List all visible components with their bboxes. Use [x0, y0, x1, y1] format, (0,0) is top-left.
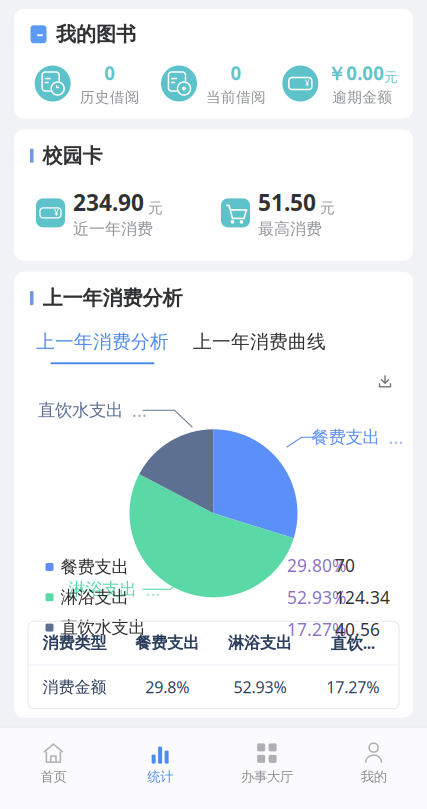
staticText: 上一年消费分析	[42, 286, 182, 310]
staticText: 直饮水支出	[60, 617, 145, 638]
button[interactable]: ¥	[282, 61, 397, 106]
staticText: ¥	[54, 208, 59, 218]
staticText: 办事大厅	[241, 769, 293, 785]
staticText: 首页	[40, 769, 66, 785]
staticText: 淋浴支出	[228, 633, 292, 653]
staticText: 52.93%	[233, 676, 286, 698]
staticText: 历史借阅	[80, 88, 140, 106]
staticText: 元	[384, 69, 397, 85]
staticText: 29.80%	[287, 554, 346, 577]
staticText: 消费类型	[42, 633, 106, 653]
staticText: 40.56	[335, 618, 380, 641]
staticText: 统计	[147, 769, 173, 785]
staticText: ¥	[305, 78, 310, 89]
button[interactable]: 下载	[375, 371, 395, 391]
staticText: 我的图书	[56, 22, 136, 47]
staticText: 17.27%	[326, 676, 379, 698]
button[interactable]: 统计	[107, 735, 214, 793]
staticText: 52.93%	[287, 586, 346, 609]
staticText: 餐费支出	[311, 427, 379, 448]
staticText: 我的	[361, 769, 387, 785]
staticText: 51.50	[258, 187, 316, 217]
staticText: 餐费支出	[60, 556, 128, 578]
staticText: 70	[335, 554, 355, 577]
staticText: 0	[230, 61, 241, 85]
staticText: 17.27%	[287, 618, 346, 641]
button[interactable]: 首页	[0, 735, 107, 793]
button[interactable]: 上一年消费分析	[36, 330, 169, 364]
button[interactable]: 上一年消费曲线	[169, 330, 326, 353]
button[interactable]: 我的	[320, 735, 427, 793]
staticText: ...	[132, 399, 147, 422]
staticText: 29.8%	[145, 676, 189, 698]
staticText: 淋浴支出	[68, 579, 136, 600]
staticText: 校园卡	[42, 143, 102, 168]
staticText: 当前借阅	[206, 88, 266, 106]
staticText: 逾期金额	[332, 88, 392, 106]
staticText: ￥0.00	[327, 61, 384, 85]
button[interactable]: ¥	[36, 187, 163, 239]
staticText: 近一年消费	[73, 219, 153, 239]
staticText: 直饮水支出	[38, 400, 123, 421]
staticText: 上一年消费分析	[36, 330, 169, 353]
staticText: 上一年消费曲线	[193, 330, 326, 353]
button[interactable]: 0	[161, 61, 266, 106]
staticText: 0	[104, 61, 115, 85]
staticText: ...	[388, 426, 403, 449]
button[interactable]: 办事大厅	[213, 735, 320, 793]
staticText: ...	[145, 578, 160, 601]
staticText: 餐费支出	[135, 633, 199, 653]
staticText: 消费金额	[42, 677, 106, 697]
button[interactable]: 0	[35, 61, 140, 106]
staticText: 元	[148, 199, 163, 217]
button[interactable]: 51.50	[221, 187, 335, 239]
staticText: 最高消费	[258, 219, 322, 239]
staticText: 124.34	[335, 586, 390, 609]
staticText: 直饮...	[331, 632, 375, 653]
staticText: 淋浴支出	[60, 587, 128, 608]
staticText: 元	[320, 199, 335, 217]
staticText: 234.90	[73, 187, 144, 217]
